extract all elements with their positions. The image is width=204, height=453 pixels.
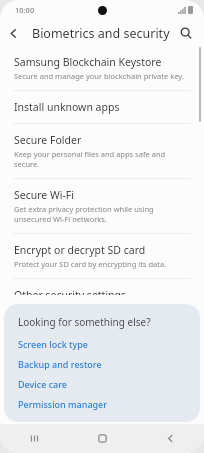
button[interactable]: Back	[0, 20, 26, 46]
button[interactable]: Backup and restore	[18, 358, 186, 370]
staticText: Other security settings	[14, 288, 127, 295]
button[interactable]: Secure Wi-Fi	[0, 179, 204, 233]
staticText: Samsung Blockchain Keystore	[14, 55, 162, 69]
staticText: Permission manager	[18, 398, 108, 410]
staticText: Biometrics and security	[32, 25, 170, 42]
button[interactable]: Device care	[18, 378, 186, 390]
staticText: Backup and restore	[18, 358, 102, 370]
staticText: Secure and manage your blockchain privat…	[14, 71, 184, 81]
staticText: Encrypt or decrypt SD card	[14, 243, 146, 257]
staticText: Install unknown apps	[14, 100, 120, 114]
staticText: Get extra privacy protection while using…	[14, 204, 186, 224]
button[interactable]: Back	[136, 424, 204, 453]
button[interactable]: Screen lock type	[18, 338, 186, 350]
staticText: Looking for something else?	[18, 315, 151, 329]
button[interactable]: Samsung Blockchain Keystore	[0, 46, 204, 90]
button[interactable]: Encrypt or decrypt SD card	[0, 234, 204, 278]
staticText: Secure Folder	[14, 133, 82, 147]
staticText: Screen lock type	[18, 338, 88, 350]
staticText: Device care	[18, 378, 68, 390]
button[interactable]: Install unknown apps	[0, 91, 204, 123]
button[interactable]: Permission manager	[18, 398, 186, 410]
staticText: 10:00	[15, 5, 35, 15]
staticText: Secure Wi-Fi	[14, 188, 75, 202]
button[interactable]: Search	[173, 20, 199, 46]
button[interactable]: Secure Folder	[0, 124, 204, 178]
staticText: Keep your personal files and apps safe a…	[14, 149, 186, 169]
staticText: Protect your SD card by encrypting its d…	[14, 259, 167, 269]
button[interactable]: Home	[68, 424, 136, 453]
button[interactable]: Other security settings	[0, 279, 204, 304]
button[interactable]: Recent apps	[0, 424, 68, 453]
